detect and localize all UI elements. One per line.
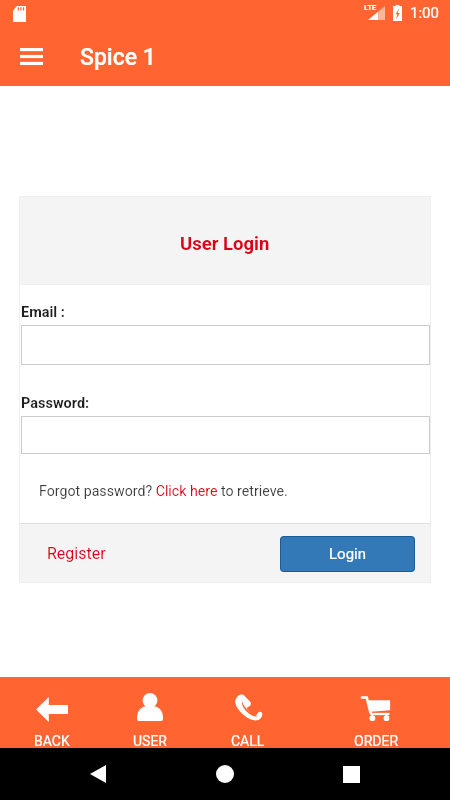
staticText: Password:: [21, 395, 90, 412]
staticText: User Login: [180, 233, 270, 255]
staticText: LTE: [364, 3, 376, 12]
button[interactable]: USER: [103, 677, 197, 748]
staticText: Spice 1: [80, 44, 156, 71]
button[interactable]: ORDER: [329, 677, 423, 748]
staticText: Login: [329, 545, 366, 563]
button[interactable]: CALL: [201, 677, 295, 748]
staticText: 1:00: [410, 4, 439, 22]
button[interactable]: Login: [280, 536, 415, 572]
staticText: Email :: [21, 304, 65, 321]
staticText: CALL: [231, 733, 265, 748]
button[interactable]: Back: [62, 748, 134, 800]
button[interactable]: Register: [19, 540, 114, 567]
button[interactable]: BACK: [5, 677, 99, 748]
staticText: BACK: [34, 733, 70, 748]
button[interactable]: Open navigation menu: [10, 35, 52, 77]
button[interactable]: Home: [189, 748, 261, 800]
button[interactable]: Recent apps: [315, 748, 387, 800]
staticText: ORDER: [354, 733, 399, 748]
staticText: USER: [133, 733, 167, 748]
staticText: Forgot password? Click here to retrieve.: [39, 483, 288, 500]
